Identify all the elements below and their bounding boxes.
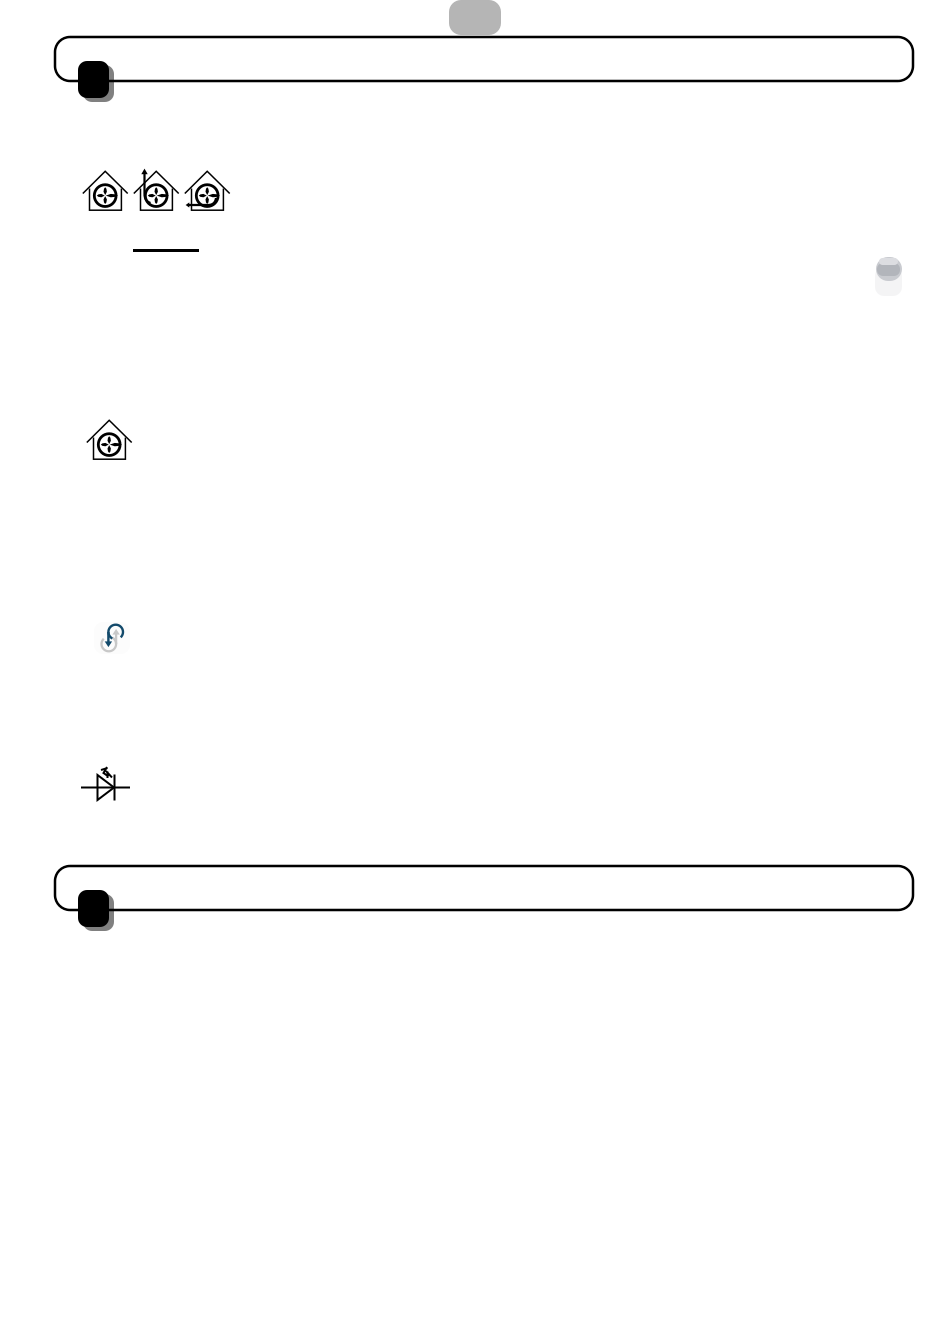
button[interactable]: Playback [81, 762, 881, 842]
button[interactable]: Continue [55, 866, 913, 936]
button[interactable]: Filters [82, 167, 229, 212]
button[interactable]: Automatic updates [94, 622, 894, 702]
staticText: Recently updated [133, 222, 396, 264]
button[interactable]: Sync your library [86, 416, 886, 508]
button[interactable]: Search [55, 37, 913, 107]
button[interactable]: Account [875, 257, 903, 295]
